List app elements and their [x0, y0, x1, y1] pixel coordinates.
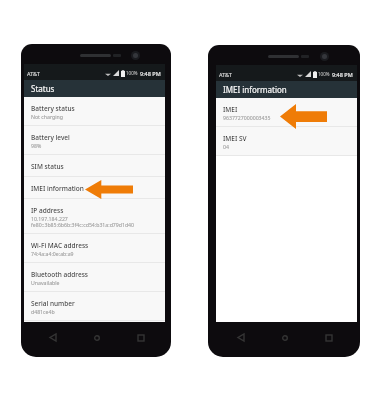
staticText: 10.197.184.227 fe80::3b85:6b6b:3f4c:cd54…	[31, 215, 135, 228]
staticText: d481ce4b	[31, 308, 55, 315]
staticText: IMEI	[223, 105, 238, 114]
staticText: 100%	[318, 71, 330, 77]
staticText: Wi-Fi MAC address	[31, 241, 89, 250]
staticText: 9:48 PM	[140, 70, 161, 77]
button[interactable]: IMEI SV	[216, 127, 357, 156]
staticText: 04	[223, 143, 229, 150]
staticText: AT&T	[219, 71, 232, 78]
staticText: Unavailable	[31, 279, 60, 286]
button[interactable]: Battery level	[24, 126, 165, 155]
staticText: 100%	[126, 70, 138, 76]
button[interactable]: Serial number	[24, 292, 165, 321]
staticText: Serial number	[31, 299, 75, 308]
button[interactable]: Back	[235, 332, 246, 343]
staticText: Battery level	[31, 133, 70, 142]
button[interactable]: IMEI information	[24, 177, 165, 199]
button[interactable]: Home	[91, 332, 102, 343]
staticText: IP address	[31, 206, 64, 215]
staticText: Bluetooth address	[31, 270, 88, 279]
staticText: IMEI SV	[223, 134, 247, 143]
staticText: IMEI information	[223, 84, 287, 95]
staticText: 9637727000003435	[223, 114, 271, 121]
button[interactable]: Battery status	[24, 97, 165, 126]
staticText: AT&T	[27, 70, 40, 77]
button[interactable]: Recent apps	[323, 332, 334, 343]
button[interactable]: SIM status	[24, 155, 165, 177]
button[interactable]: Recent apps	[135, 332, 146, 343]
button[interactable]: Bluetooth address	[24, 263, 165, 292]
button[interactable]: Back	[47, 332, 58, 343]
button[interactable]: IP address	[24, 199, 165, 234]
staticText: 74:4a:a4:0e:ab:a9	[31, 250, 74, 257]
button[interactable]: Home	[279, 332, 290, 343]
staticText: Status	[31, 83, 55, 94]
staticText: 98%	[31, 142, 42, 149]
staticText: Not charging	[31, 113, 63, 120]
staticText: SIM status	[31, 162, 64, 171]
staticText: Battery status	[31, 104, 75, 113]
staticText: IMEI information	[31, 184, 84, 193]
button[interactable]: Wi-Fi MAC address	[24, 234, 165, 263]
button[interactable]: IMEI	[216, 98, 357, 127]
staticText: 9:48 PM	[332, 71, 353, 78]
